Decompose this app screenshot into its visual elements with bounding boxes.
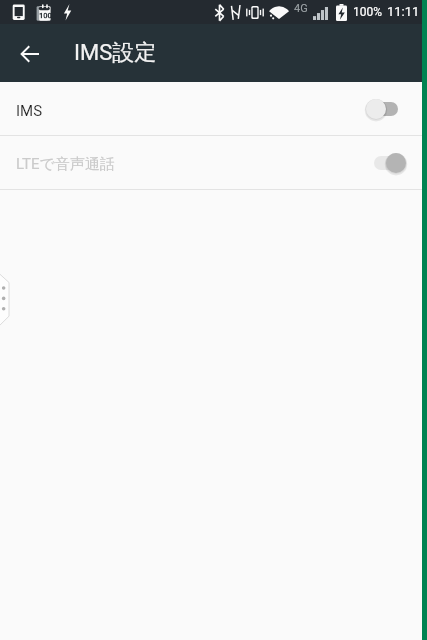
staticText: IMS xyxy=(16,102,43,120)
staticText: 100% xyxy=(353,5,383,19)
staticText: 4G xyxy=(294,2,308,15)
staticText: IMS設定 xyxy=(74,39,157,67)
button[interactable]: LTEで音声通話 xyxy=(0,136,427,189)
button[interactable]: Off xyxy=(364,91,408,127)
staticText: 11:11 xyxy=(387,4,420,19)
button[interactable]: Open navigation drawer xyxy=(0,267,10,333)
button[interactable]: Back xyxy=(13,37,47,71)
staticText: LTEで音声通話 xyxy=(16,155,115,174)
staticText: 100 xyxy=(39,11,52,20)
button[interactable]: On xyxy=(364,145,408,181)
button[interactable]: IMS xyxy=(0,82,427,135)
